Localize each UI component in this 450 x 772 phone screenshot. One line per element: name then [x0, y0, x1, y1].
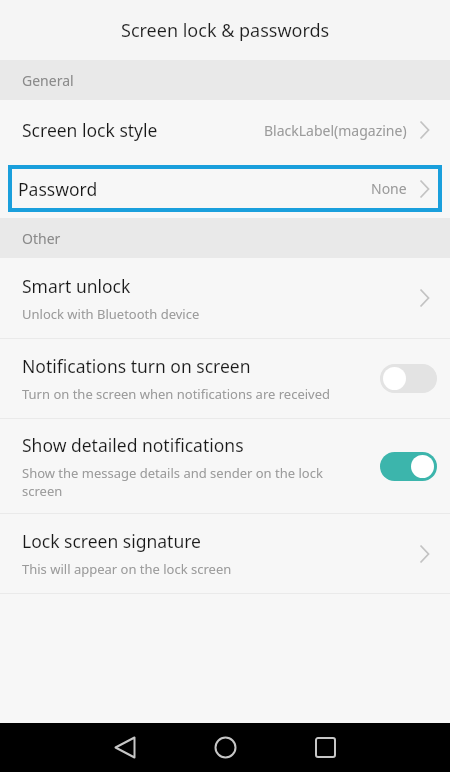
staticText: Password: [18, 177, 98, 201]
button[interactable]: Notifications turn on screen: [0, 339, 450, 418]
button[interactable]: Lock screen signature: [0, 514, 450, 593]
staticText: General: [22, 71, 74, 90]
button[interactable]: Password: [8, 165, 442, 212]
staticText: Screen lock & passwords: [121, 18, 330, 43]
staticText: BlackLabel(magazine): [264, 121, 407, 140]
staticText: Show detailed notifications: [22, 433, 244, 457]
staticText: Other: [22, 229, 61, 248]
staticText: Turn on the screen when notifications ar…: [22, 385, 331, 403]
button[interactable]: Show detailed notifications: [0, 419, 450, 513]
button[interactable]: Screen lock style: [0, 100, 450, 160]
staticText: None: [371, 179, 407, 198]
staticText: Notifications turn on screen: [22, 354, 251, 378]
staticText: Screen lock style: [22, 118, 158, 142]
button[interactable]: [175, 723, 275, 772]
staticText: Show the message details and sender on t…: [22, 464, 323, 500]
button[interactable]: [275, 723, 375, 772]
button[interactable]: [380, 364, 437, 393]
button[interactable]: [380, 452, 437, 481]
staticText: This will appear on the lock screen: [22, 560, 232, 578]
button[interactable]: [75, 723, 175, 772]
staticText: Unlock with Bluetooth device: [22, 305, 200, 323]
staticText: Smart unlock: [22, 274, 131, 298]
staticText: Lock screen signature: [22, 529, 201, 553]
button[interactable]: Smart unlock: [0, 258, 450, 338]
